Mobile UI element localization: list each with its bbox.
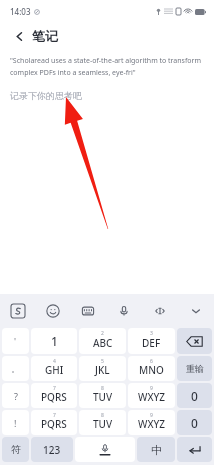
button[interactable]: 6 [128,356,175,381]
staticText: 4 [53,358,56,365]
staticText: 14:03 [10,6,31,17]
staticText: ! [14,417,17,429]
button[interactable]: 0 [177,410,212,435]
button[interactable]: 7 [31,410,77,435]
staticText: "Scholaread uses a state-of-the-art algo… [10,56,202,77]
button[interactable]: Enter [177,437,212,462]
button[interactable]: Emoji [35,294,70,327]
button[interactable]: 1 [31,328,77,354]
button[interactable]: Voice input [106,294,142,327]
button[interactable]: 9 [128,383,175,408]
staticText: DEF [142,336,161,350]
staticText: 3 [150,330,153,337]
staticText: ? [14,390,18,402]
button[interactable]: Space [75,437,135,462]
staticText: 8 [101,385,104,392]
button[interactable]: Backspace [177,328,212,354]
staticText: 中 [151,443,162,457]
button[interactable]: 8 [79,410,126,435]
button[interactable]: 9 [128,410,175,435]
staticText: WXYZ [138,390,166,404]
staticText: 0 [191,415,198,431]
staticText: ABC [93,336,113,350]
staticText: TUV [93,417,113,431]
button[interactable]: 记录下你的思考吧 [10,85,214,105]
button[interactable]: 。 [2,356,29,381]
staticText: JKL [95,363,110,377]
button[interactable]: 符 [2,437,29,462]
staticText: 符 [11,443,21,456]
staticText: 5 [101,358,104,365]
button[interactable]: 中 [137,437,175,462]
staticText: TUV [93,390,113,404]
button[interactable]: Move cursor [142,294,178,327]
button[interactable]: ! [2,410,29,435]
staticText: 9 [150,385,153,392]
staticText: 123 [43,443,61,457]
button[interactable]: 7 [31,383,77,408]
button[interactable]: Hide keyboard [178,294,214,327]
staticText: PQRS [41,390,67,404]
staticText: ' [14,335,17,347]
button[interactable]: 0 [177,383,212,408]
staticText: 8 [101,412,104,419]
button[interactable]: 5 [79,356,126,381]
staticText: 2 [101,330,104,337]
staticText: 7 [53,385,56,392]
staticText: MNO [139,363,164,377]
staticText: GHI [45,363,64,377]
button[interactable]: Keyboard [70,294,106,327]
button[interactable]: 3 [128,328,175,354]
staticText: WXYZ [138,417,166,431]
button[interactable]: 8 [79,383,126,408]
button[interactable]: ' [2,328,29,354]
button[interactable]: Sogou input [0,294,35,327]
staticText: 重输 [186,363,204,374]
button[interactable]: ? [2,383,29,408]
staticText: 7 [53,412,56,419]
staticText: 记录下你的思考吧 [10,90,82,101]
staticText: 1 [51,333,58,349]
button[interactable]: 重输 [177,356,212,381]
button[interactable]: 2 [79,328,126,354]
staticText: 笔记 [32,28,58,44]
staticText: 。 [11,363,20,374]
staticText: 9 [150,412,153,419]
button[interactable]: 123 [31,437,73,462]
button[interactable]: 4 [31,356,77,381]
staticText: PQRS [41,417,67,431]
staticText: 6 [150,358,153,365]
staticText: 0 [191,388,198,404]
button[interactable]: Back [9,26,29,46]
